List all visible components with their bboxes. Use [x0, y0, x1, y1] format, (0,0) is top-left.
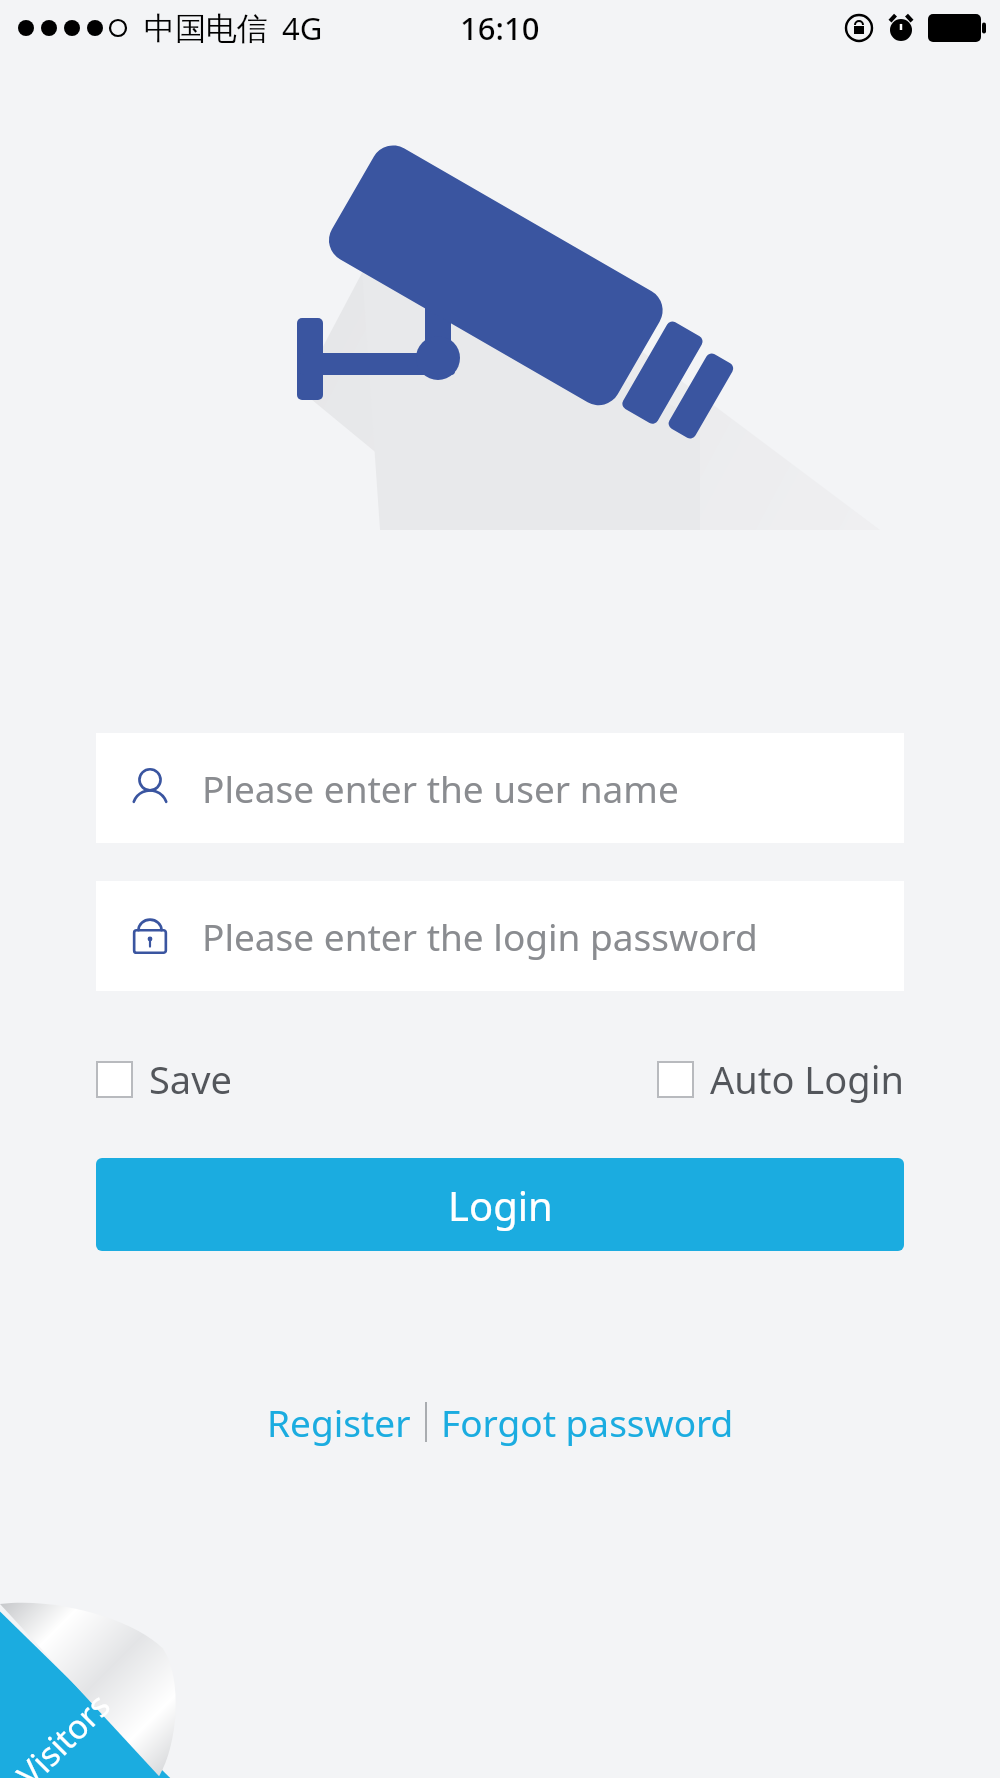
button[interactable]: Login — [96, 1158, 904, 1251]
staticText: Forgot password — [441, 1397, 734, 1447]
button[interactable]: Auto Login — [657, 1053, 904, 1105]
button[interactable]: Please enter the user name — [96, 733, 904, 843]
button[interactable]: Visitors — [0, 1593, 185, 1778]
staticText: Auto Login — [710, 1053, 904, 1105]
staticText: 4G — [282, 7, 323, 49]
staticText: Login — [448, 1178, 553, 1232]
staticText: Register — [267, 1397, 411, 1447]
staticText: Save — [149, 1053, 232, 1105]
staticText: 16:10 — [460, 7, 540, 49]
staticText: Please enter the user name — [202, 763, 679, 813]
button[interactable]: Please enter the login password — [96, 881, 904, 991]
staticText: Visitors — [7, 1683, 119, 1778]
button[interactable]: Forgot password — [427, 1391, 748, 1453]
staticText: 中国电信 — [144, 9, 268, 48]
button[interactable]: Save — [96, 1053, 232, 1105]
button[interactable]: Register — [253, 1391, 425, 1453]
staticText: Please enter the login password — [202, 911, 758, 961]
